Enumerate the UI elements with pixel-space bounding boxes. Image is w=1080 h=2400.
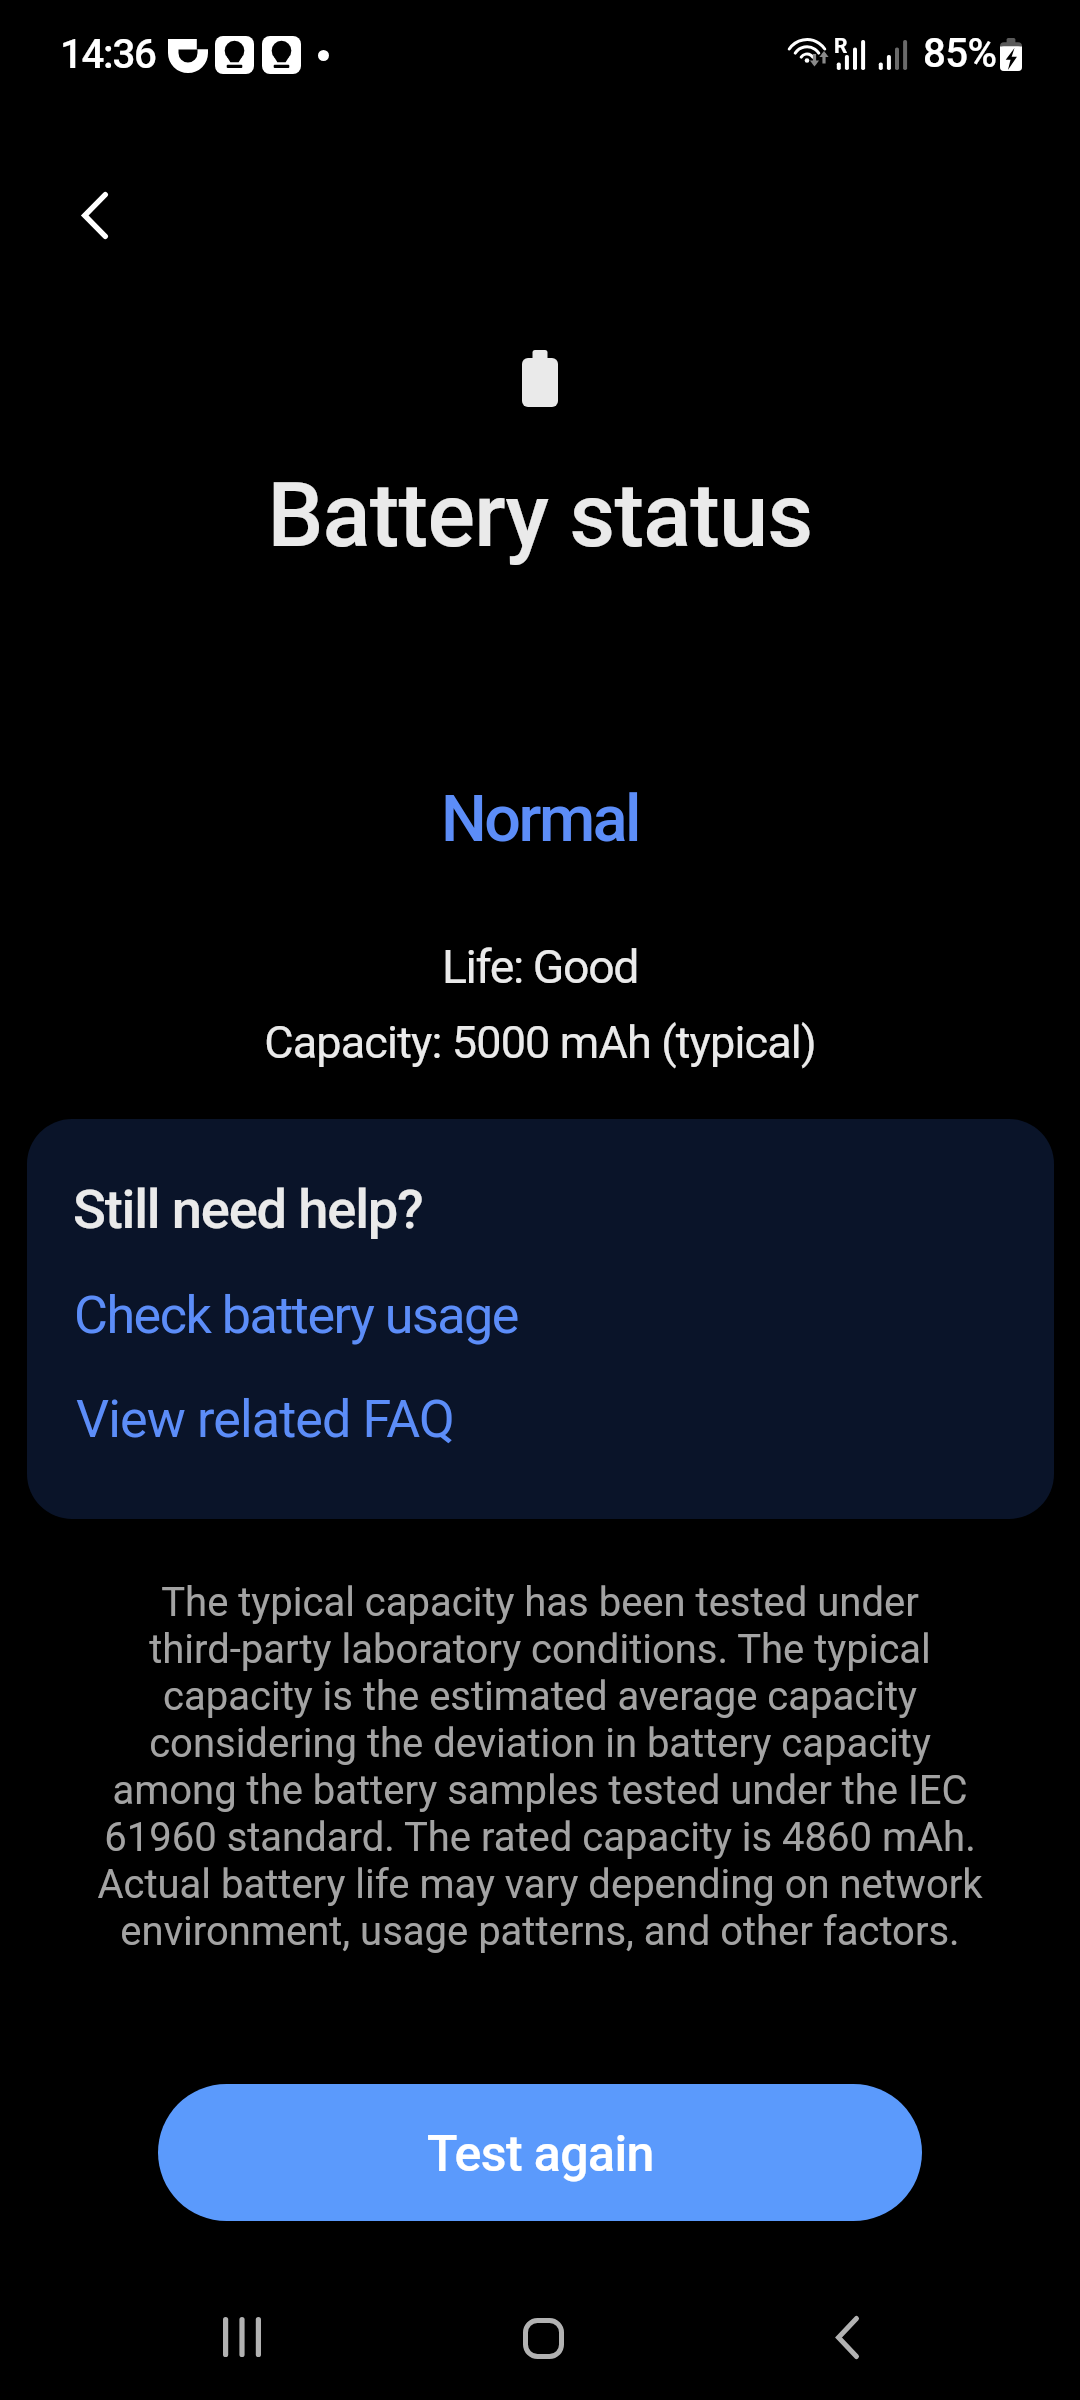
button[interactable]: View related FAQ xyxy=(27,1363,1054,1466)
staticText: Normal xyxy=(0,781,1080,857)
staticText: Battery status xyxy=(0,464,1080,568)
button[interactable]: Navigate up xyxy=(45,165,145,265)
staticText: 85% xyxy=(923,30,997,77)
button[interactable]: Recent apps xyxy=(182,2277,302,2397)
staticText: Capacity: 5000 mAh (typical) xyxy=(0,1016,1080,1069)
staticText: Check battery usage xyxy=(74,1285,518,1346)
staticText: 14:36 xyxy=(60,31,156,78)
button[interactable]: Back xyxy=(787,2277,907,2397)
staticText: View related FAQ xyxy=(76,1389,454,1450)
staticText: Test again xyxy=(427,2125,654,2184)
staticText: Still need help? xyxy=(73,1178,423,1242)
button[interactable]: Test again xyxy=(158,2084,922,2221)
staticText: R xyxy=(834,34,848,59)
button[interactable]: Check battery usage xyxy=(27,1260,1054,1363)
staticText: The typical capacity has been tested und… xyxy=(90,1579,990,1955)
staticText: Life: Good xyxy=(0,940,1080,994)
button[interactable]: Home xyxy=(483,2278,603,2398)
